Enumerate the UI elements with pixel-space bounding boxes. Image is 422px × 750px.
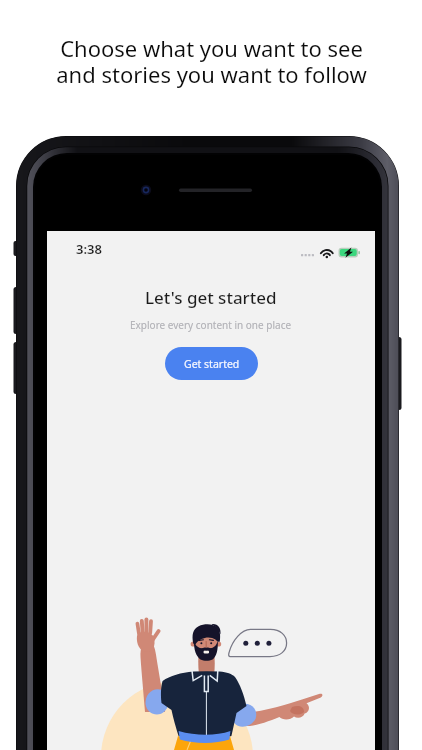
staticText: Explore every content in one place <box>130 318 292 332</box>
staticText: Let's get started <box>145 286 277 309</box>
staticText: 3:38 <box>76 240 102 258</box>
button[interactable]: Get started <box>165 347 258 380</box>
staticText: Choose what you want to see and stories … <box>56 33 367 90</box>
staticText: Get started <box>184 357 240 371</box>
